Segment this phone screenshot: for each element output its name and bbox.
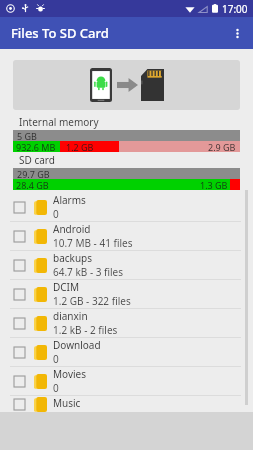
staticText: 1.2 GB [66, 141, 94, 152]
button[interactable]: Select Download [14, 347, 25, 358]
button[interactable]: Select dianxin [14, 318, 25, 329]
staticText: dianxin [53, 309, 88, 323]
staticText: 0 [53, 352, 59, 366]
staticText: 1.2 GB - 322 files [53, 294, 131, 308]
staticText: Music [53, 396, 81, 410]
button[interactable]: Select dianxin [0, 309, 253, 338]
button[interactable]: Select DCIM [0, 280, 253, 309]
button[interactable]: Select Download [0, 338, 253, 367]
staticText: 0 [53, 381, 59, 395]
button[interactable]: Select Music [14, 399, 25, 410]
staticText: 1.2 kB - 2 files [53, 323, 118, 337]
staticText: Files To SD Card [11, 24, 109, 42]
staticText: SD card [19, 153, 55, 167]
staticText: Movies [53, 367, 87, 381]
button[interactable]: More options [221, 17, 253, 49]
button[interactable]: Select backups [0, 251, 253, 280]
staticText: Download [53, 338, 101, 352]
staticText: Internal memory [19, 115, 99, 129]
staticText: 2.9 GB [208, 141, 236, 152]
staticText: 1.3 GB [200, 179, 228, 190]
staticText: 28.4 GB [16, 179, 49, 190]
staticText: backups [53, 251, 93, 265]
staticText: 0 [53, 207, 59, 221]
button[interactable]: Select Android [0, 222, 253, 251]
button[interactable]: Select Android [14, 231, 25, 242]
staticText: 932.6 MB [16, 141, 56, 152]
staticText: 64.7 kB - 3 files [53, 265, 124, 279]
staticText: DCIM [53, 280, 80, 294]
button[interactable]: Select Music [0, 396, 253, 412]
button[interactable]: Select DCIM [14, 289, 25, 300]
staticText: Android [53, 222, 91, 236]
button[interactable]: Select backups [14, 260, 25, 271]
button[interactable]: Select Alarms [0, 193, 253, 222]
staticText: 29.7 GB [17, 168, 50, 179]
staticText: Alarms [53, 193, 86, 207]
button[interactable]: Select Movies [14, 376, 25, 387]
button[interactable]: Select Alarms [14, 202, 25, 213]
staticText: 5 GB [17, 130, 37, 141]
button[interactable]: Select Movies [0, 367, 253, 396]
staticText: 10.7 MB - 41 files [53, 236, 133, 250]
staticText: 17:00 [222, 2, 248, 16]
